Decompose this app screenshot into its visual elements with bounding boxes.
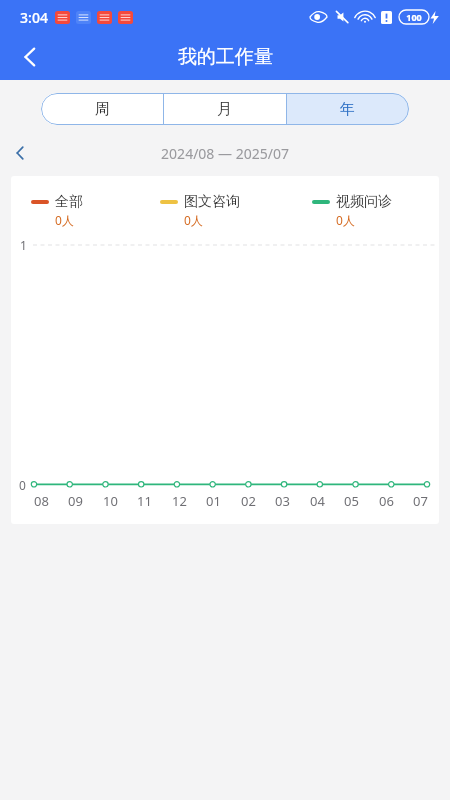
button[interactable]: 全部 [31,193,160,228]
button[interactable]: 年 [286,93,409,125]
staticText: 月 [217,100,232,119]
staticText: 2024/08 — 2025/07 [161,144,289,163]
staticText: 0 [19,477,26,493]
staticText: 03 [275,492,290,510]
staticText: 01 [206,492,221,510]
button[interactable]: Previous period [4,141,36,165]
staticText: 0人 [184,212,203,228]
staticText: 08 [34,492,49,510]
staticText: 100 [406,11,422,23]
button[interactable]: 图文咨询 [160,193,312,228]
staticText: 图文咨询 [184,193,240,211]
staticText: 3:04 [20,8,48,27]
staticText: 年 [340,100,355,119]
button[interactable]: 视频问诊 [312,193,433,228]
staticText: 11 [137,492,152,510]
staticText: 0人 [55,212,74,228]
staticText: 12 [172,492,187,510]
staticText: 1 [20,237,27,253]
staticText: 全部 [55,193,83,211]
staticText: 视频问诊 [336,193,392,211]
button[interactable]: Back [8,35,52,79]
staticText: 周 [95,100,110,119]
staticText: 0人 [336,212,355,228]
staticText: 我的工作量 [178,45,273,69]
staticText: 04 [310,492,325,510]
button[interactable]: 周 [41,93,163,125]
staticText: 10 [103,492,118,510]
button[interactable]: 月 [163,93,286,125]
staticText: 07 [413,492,428,510]
staticText: 05 [344,492,359,510]
staticText: 06 [379,492,394,510]
staticText: 02 [241,492,256,510]
staticText: 09 [68,492,83,510]
